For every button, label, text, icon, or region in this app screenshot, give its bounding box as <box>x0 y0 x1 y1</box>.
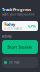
staticText: Track Progress <box>2 7 31 12</box>
staticText: watch your daily routine <box>2 13 35 16</box>
staticText: Today <box>4 22 15 27</box>
staticText: 67% <box>28 23 36 29</box>
staticText: On track <box>9 61 19 64</box>
staticText: 4 of 6 habits <box>4 27 22 30</box>
staticText: Start Session <box>7 44 32 50</box>
button[interactable]: On track <box>2 57 38 68</box>
button[interactable]: Start Session <box>2 40 38 54</box>
staticText: Activity <box>2 35 11 38</box>
